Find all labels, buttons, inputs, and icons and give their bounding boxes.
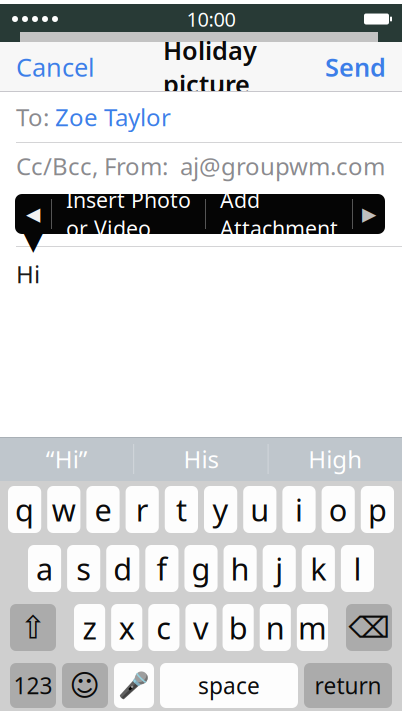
button[interactable]: Shift [10,604,56,651]
staticText: i [295,489,303,530]
staticText: d [113,548,132,589]
staticText: ⇧ [19,609,46,646]
button[interactable]: Cancel [0,38,111,96]
staticText: t [176,489,187,530]
button[interactable]: r [126,486,159,533]
staticText: a [36,548,53,589]
button[interactable]: return [304,663,392,708]
staticText: k [310,548,326,589]
button[interactable]: e [86,486,120,533]
button[interactable]: q [8,486,41,533]
button[interactable]: v [185,604,216,651]
button[interactable]: k [302,545,335,592]
button[interactable]: m [297,604,328,651]
staticText: Insert Photo or Video [66,186,191,242]
staticText: e [94,489,111,530]
staticText: To: [16,101,49,133]
button[interactable]: h [224,545,257,592]
button[interactable]: z [74,604,105,651]
staticText: u [250,489,269,530]
button[interactable]: His [134,437,268,481]
staticText: z [83,607,97,648]
staticText: Cc/Bcc, From: aj@groupwm.com [16,150,385,182]
button[interactable]: High [269,437,402,481]
staticText: y [213,489,229,530]
staticText: v [193,607,209,648]
staticText: Hi [16,258,40,290]
staticText: r [136,489,149,530]
button[interactable]: 123 [10,663,56,708]
button[interactable]: space [160,663,298,708]
button[interactable]: d [106,545,139,592]
staticText: s [76,548,91,589]
button[interactable]: b [223,604,254,651]
staticText: p [368,489,387,530]
staticText: space [198,670,260,700]
staticText: Zoe Taylor [49,101,171,133]
staticText: w [52,489,76,530]
button[interactable]: u [243,486,276,533]
button[interactable]: w [47,486,80,533]
button[interactable]: y [204,486,237,533]
staticText: ◀ [26,203,40,225]
button[interactable]: g [184,545,217,592]
staticText: g [191,548,210,589]
staticText: m [298,607,327,648]
staticText: c [156,607,171,648]
button[interactable]: Cc/Bcc, From: aj@groupwm.com [0,143,402,189]
staticText: ⌫ [348,611,389,644]
button[interactable]: o [322,486,355,533]
button[interactable]: s [67,545,100,592]
button[interactable]: Dictation [114,663,154,708]
staticText: Add Attachment [220,186,338,242]
staticText: l [353,548,361,589]
button[interactable]: n [260,604,291,651]
staticText: Cancel [16,50,95,84]
staticText: h [231,548,250,589]
button[interactable]: More options [353,194,385,234]
staticText: 10:00 [186,6,235,32]
button[interactable]: a [28,545,61,592]
button[interactable]: Insert Photo or Video [52,194,205,234]
button[interactable]: Send [309,38,402,96]
staticText: ☺ [69,669,100,702]
staticText: ▶ [362,203,376,225]
staticText: q [15,489,34,530]
staticText: Holiday picture [163,33,257,101]
button[interactable]: p [361,486,394,533]
staticText: “Hi” [46,443,88,475]
button[interactable]: x [111,604,142,651]
button[interactable]: Add Attachment [206,194,352,234]
staticText: 123 [13,670,52,700]
button[interactable]: j [263,545,296,592]
button[interactable]: “Hi” [0,437,133,481]
button[interactable]: Previous options [15,194,51,234]
staticText: ▼ [23,227,42,255]
staticText: o [329,489,348,530]
button[interactable]: Emoji [62,663,108,708]
staticText: 🎤 [118,671,150,700]
button[interactable]: i [282,486,316,533]
staticText: x [119,607,135,648]
button[interactable]: To: [0,92,402,142]
staticText: j [275,548,283,589]
button[interactable]: c [148,604,179,651]
staticText: His [183,443,218,475]
staticText: f [156,548,167,589]
staticText: High [308,443,362,475]
staticText: return [314,670,381,700]
button[interactable]: t [165,486,198,533]
button[interactable]: Delete [346,604,392,651]
button[interactable]: l [341,545,374,592]
staticText: n [266,607,285,648]
staticText: Send [325,50,386,84]
staticText: b [229,607,248,648]
button[interactable]: f [145,545,178,592]
